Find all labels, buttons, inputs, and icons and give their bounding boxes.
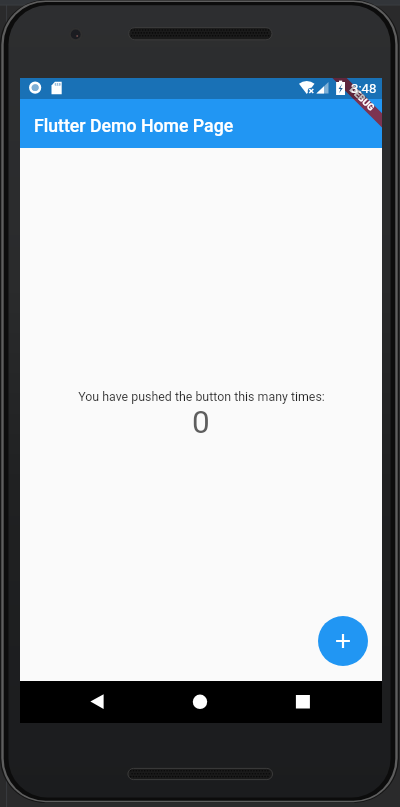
staticText: DEBUG: [348, 84, 377, 113]
staticText: 0: [192, 404, 210, 441]
button[interactable]: Back: [87, 681, 107, 723]
button[interactable]: Increment: [318, 616, 368, 666]
button[interactable]: Home: [190, 681, 210, 723]
staticText: 3:48: [351, 81, 377, 96]
button[interactable]: Recent apps: [293, 681, 313, 723]
button[interactable]: Flutter Demo Home Page: [20, 78, 382, 148]
staticText: Flutter Demo Home Page: [34, 116, 234, 137]
staticText: You have pushed the button this many tim…: [78, 389, 325, 404]
